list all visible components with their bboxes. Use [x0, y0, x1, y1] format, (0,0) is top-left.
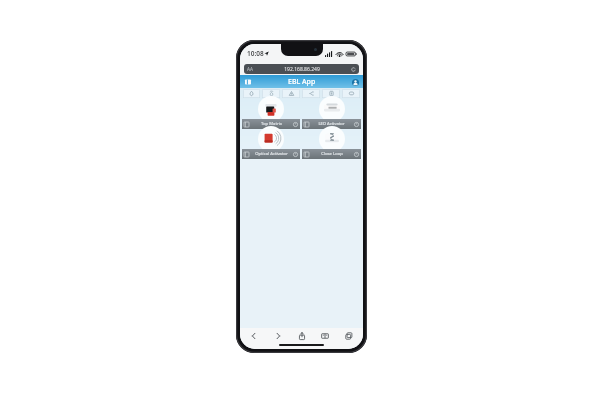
button[interactable]: Warning [282, 89, 300, 98]
button[interactable]: Info [322, 89, 340, 98]
staticText: Close Loop [321, 151, 343, 157]
button[interactable]: Tabs [341, 329, 357, 342]
other: Reload [351, 67, 356, 72]
button[interactable]: Forward [270, 329, 286, 342]
button[interactable]: Fire [243, 89, 260, 98]
button[interactable]: Chat [342, 89, 360, 98]
button[interactable]: Optical Activator [242, 129, 300, 159]
button[interactable]: Bookmarks [317, 329, 333, 342]
button[interactable]: LED Activator [302, 99, 361, 129]
button[interactable]: Share [294, 329, 310, 342]
button[interactable]: AA [244, 64, 359, 74]
staticText: AA [247, 66, 253, 72]
button[interactable]: Network [302, 89, 320, 98]
button[interactable]: Top Matrix [242, 99, 300, 129]
staticText: 10:08 [247, 49, 264, 58]
staticText: Optical Activator [255, 151, 288, 157]
button[interactable]: Account [351, 78, 359, 86]
button[interactable]: Close Loop [302, 129, 361, 159]
staticText: LED Activator [318, 121, 345, 127]
button[interactable]: Menu [244, 78, 251, 85]
staticText: 192.168.86.249 [284, 66, 320, 73]
button[interactable]: Back [246, 329, 262, 342]
button[interactable]: Smoke [262, 89, 280, 98]
staticText: Top Matrix [261, 121, 282, 127]
staticText: EBL App [288, 77, 316, 87]
